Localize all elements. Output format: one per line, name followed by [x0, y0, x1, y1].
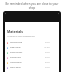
- staticText: Steel rebar: [10, 46, 21, 49]
- button[interactable]: Cement bag: [5, 40, 59, 45]
- staticText: Plaster mix: [10, 56, 21, 59]
- staticText: 12 items in your shopping list: [7, 35, 35, 38]
- staticText: Materials: [7, 29, 23, 34]
- button[interactable]: Wood plank: [5, 60, 59, 65]
- button[interactable]: Paint bucket: [5, 50, 59, 55]
- button[interactable]: Glass pane: [5, 65, 59, 70]
- staticText: 5 pcs: [45, 56, 50, 59]
- staticText: 4 pcs: [45, 66, 50, 69]
- staticText: Wood plank: [10, 61, 22, 64]
- button[interactable]: Plaster mix: [5, 55, 59, 60]
- staticText: 3 pcs: [45, 41, 50, 44]
- staticText: Cement bag: [10, 41, 22, 44]
- staticText: Be reminded when you are close to your s…: [4, 2, 60, 10]
- staticText: 2 pcs: [45, 51, 50, 54]
- staticText: Glass pane: [10, 66, 21, 69]
- staticText: 8 pcs: [45, 61, 50, 64]
- staticText: Paint bucket: [10, 51, 23, 54]
- button[interactable]: Steel rebar: [5, 45, 59, 50]
- staticText: 12 pcs: [44, 46, 50, 49]
